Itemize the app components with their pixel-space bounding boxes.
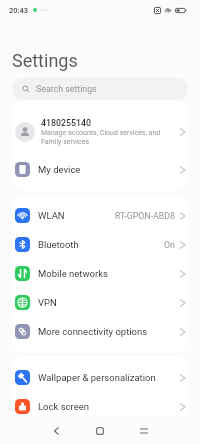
staticText: Wallpaper & personalization (38, 372, 156, 383)
staticText: Settings (12, 50, 78, 71)
button[interactable]: Mobile networks (12, 259, 188, 288)
button[interactable]: My device (12, 155, 188, 184)
button[interactable]: Lock screen (12, 392, 188, 421)
staticText: Search settings (36, 84, 97, 94)
button[interactable]: Back (43, 418, 69, 444)
staticText: WLAN (38, 210, 65, 221)
staticText: More connectivity options (38, 326, 148, 337)
button[interactable]: Wallpaper & personalization (12, 363, 188, 392)
staticText: Mobile networks (38, 268, 108, 279)
button[interactable]: VPN (12, 288, 188, 317)
button[interactable]: Recents (131, 418, 157, 444)
button[interactable]: Bluetooth (12, 230, 188, 259)
staticText: Manage accounts, Cloud services, and Fam… (41, 129, 175, 146)
button[interactable]: WLAN (12, 201, 188, 230)
button[interactable]: Search settings (12, 78, 188, 100)
button[interactable]: 4180255140 (12, 108, 188, 155)
staticText: On (164, 240, 175, 250)
button[interactable]: Home (87, 418, 113, 444)
staticText: Lock screen (38, 401, 90, 412)
staticText: Bluetooth (38, 239, 79, 250)
staticText: VPN (38, 297, 57, 308)
staticText: My device (38, 164, 81, 175)
button[interactable]: More connectivity options (12, 317, 188, 346)
staticText: 4180255140 (41, 118, 91, 128)
staticText: RT-GPON-ABD8 (115, 211, 175, 221)
staticText: 20:43 (9, 6, 29, 15)
